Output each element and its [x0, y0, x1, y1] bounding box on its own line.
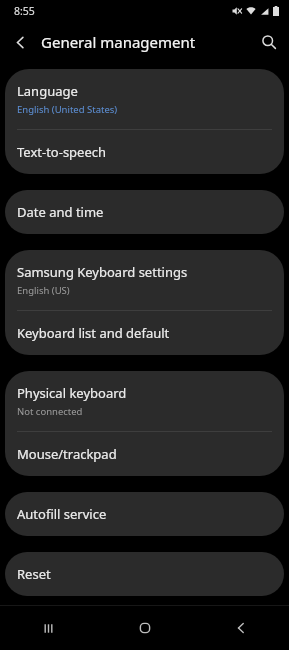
button[interactable]: Date and time	[5, 190, 284, 234]
staticText: Physical keyboard	[17, 384, 127, 402]
button[interactable]: Back	[193, 606, 289, 650]
button[interactable]: Back	[0, 22, 40, 62]
button[interactable]: Keyboard list and default	[5, 311, 284, 355]
staticText: Not connected	[17, 405, 83, 418]
button[interactable]: Reset	[5, 552, 284, 596]
staticText: Samsung Keyboard settings	[17, 263, 188, 281]
staticText: English (US)	[17, 284, 70, 297]
button[interactable]: Home	[97, 606, 193, 650]
staticText: English (United States)	[17, 103, 118, 116]
staticText: 8:55	[14, 4, 35, 18]
staticText: Date and time	[17, 203, 104, 221]
staticText: Mouse/trackpad	[17, 445, 117, 463]
button[interactable]: Search	[249, 22, 289, 62]
button[interactable]: Physical keyboard	[5, 371, 284, 431]
staticText: Reset	[17, 565, 51, 583]
button[interactable]: Text-to-speech	[5, 130, 284, 174]
staticText: Text-to-speech	[17, 143, 107, 161]
button[interactable]: Mouse/trackpad	[5, 432, 284, 476]
button[interactable]: Recent apps	[0, 606, 97, 650]
staticText: Language	[17, 82, 78, 100]
staticText: General management	[41, 32, 196, 52]
button[interactable]: Language	[5, 69, 284, 129]
staticText: Autofill service	[17, 505, 107, 523]
button[interactable]: Samsung Keyboard settings	[5, 250, 284, 310]
staticText: Keyboard list and default	[17, 324, 170, 342]
button[interactable]: Autofill service	[5, 492, 284, 536]
